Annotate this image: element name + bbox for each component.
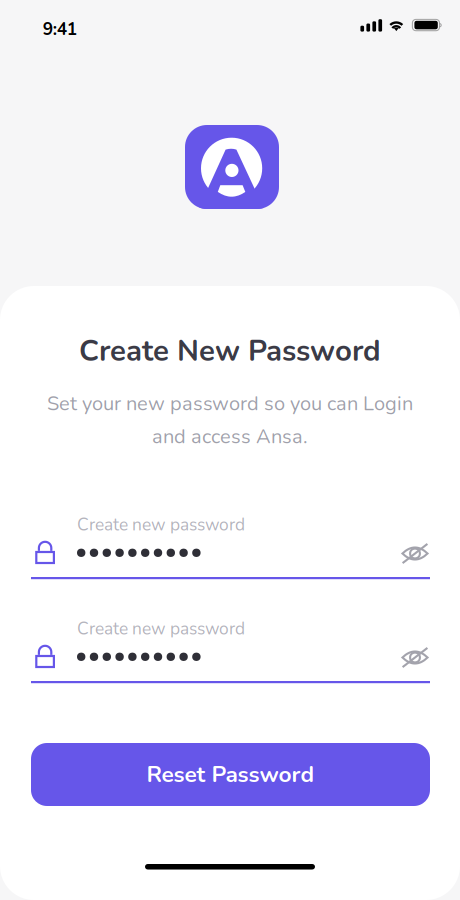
staticText: Create New Password — [79, 331, 381, 371]
button[interactable]: Show password — [401, 542, 429, 564]
staticText: Reset Password — [146, 759, 314, 790]
staticText: 9:41 — [43, 17, 77, 41]
staticText: Create new password — [77, 617, 245, 641]
button[interactable]: Show password — [401, 646, 429, 668]
staticText: and access Ansa. — [152, 423, 308, 450]
staticText: Set your new password so you can Login — [47, 390, 413, 417]
button[interactable]: Reset Password — [31, 743, 430, 806]
staticText: Create new password — [77, 513, 245, 537]
